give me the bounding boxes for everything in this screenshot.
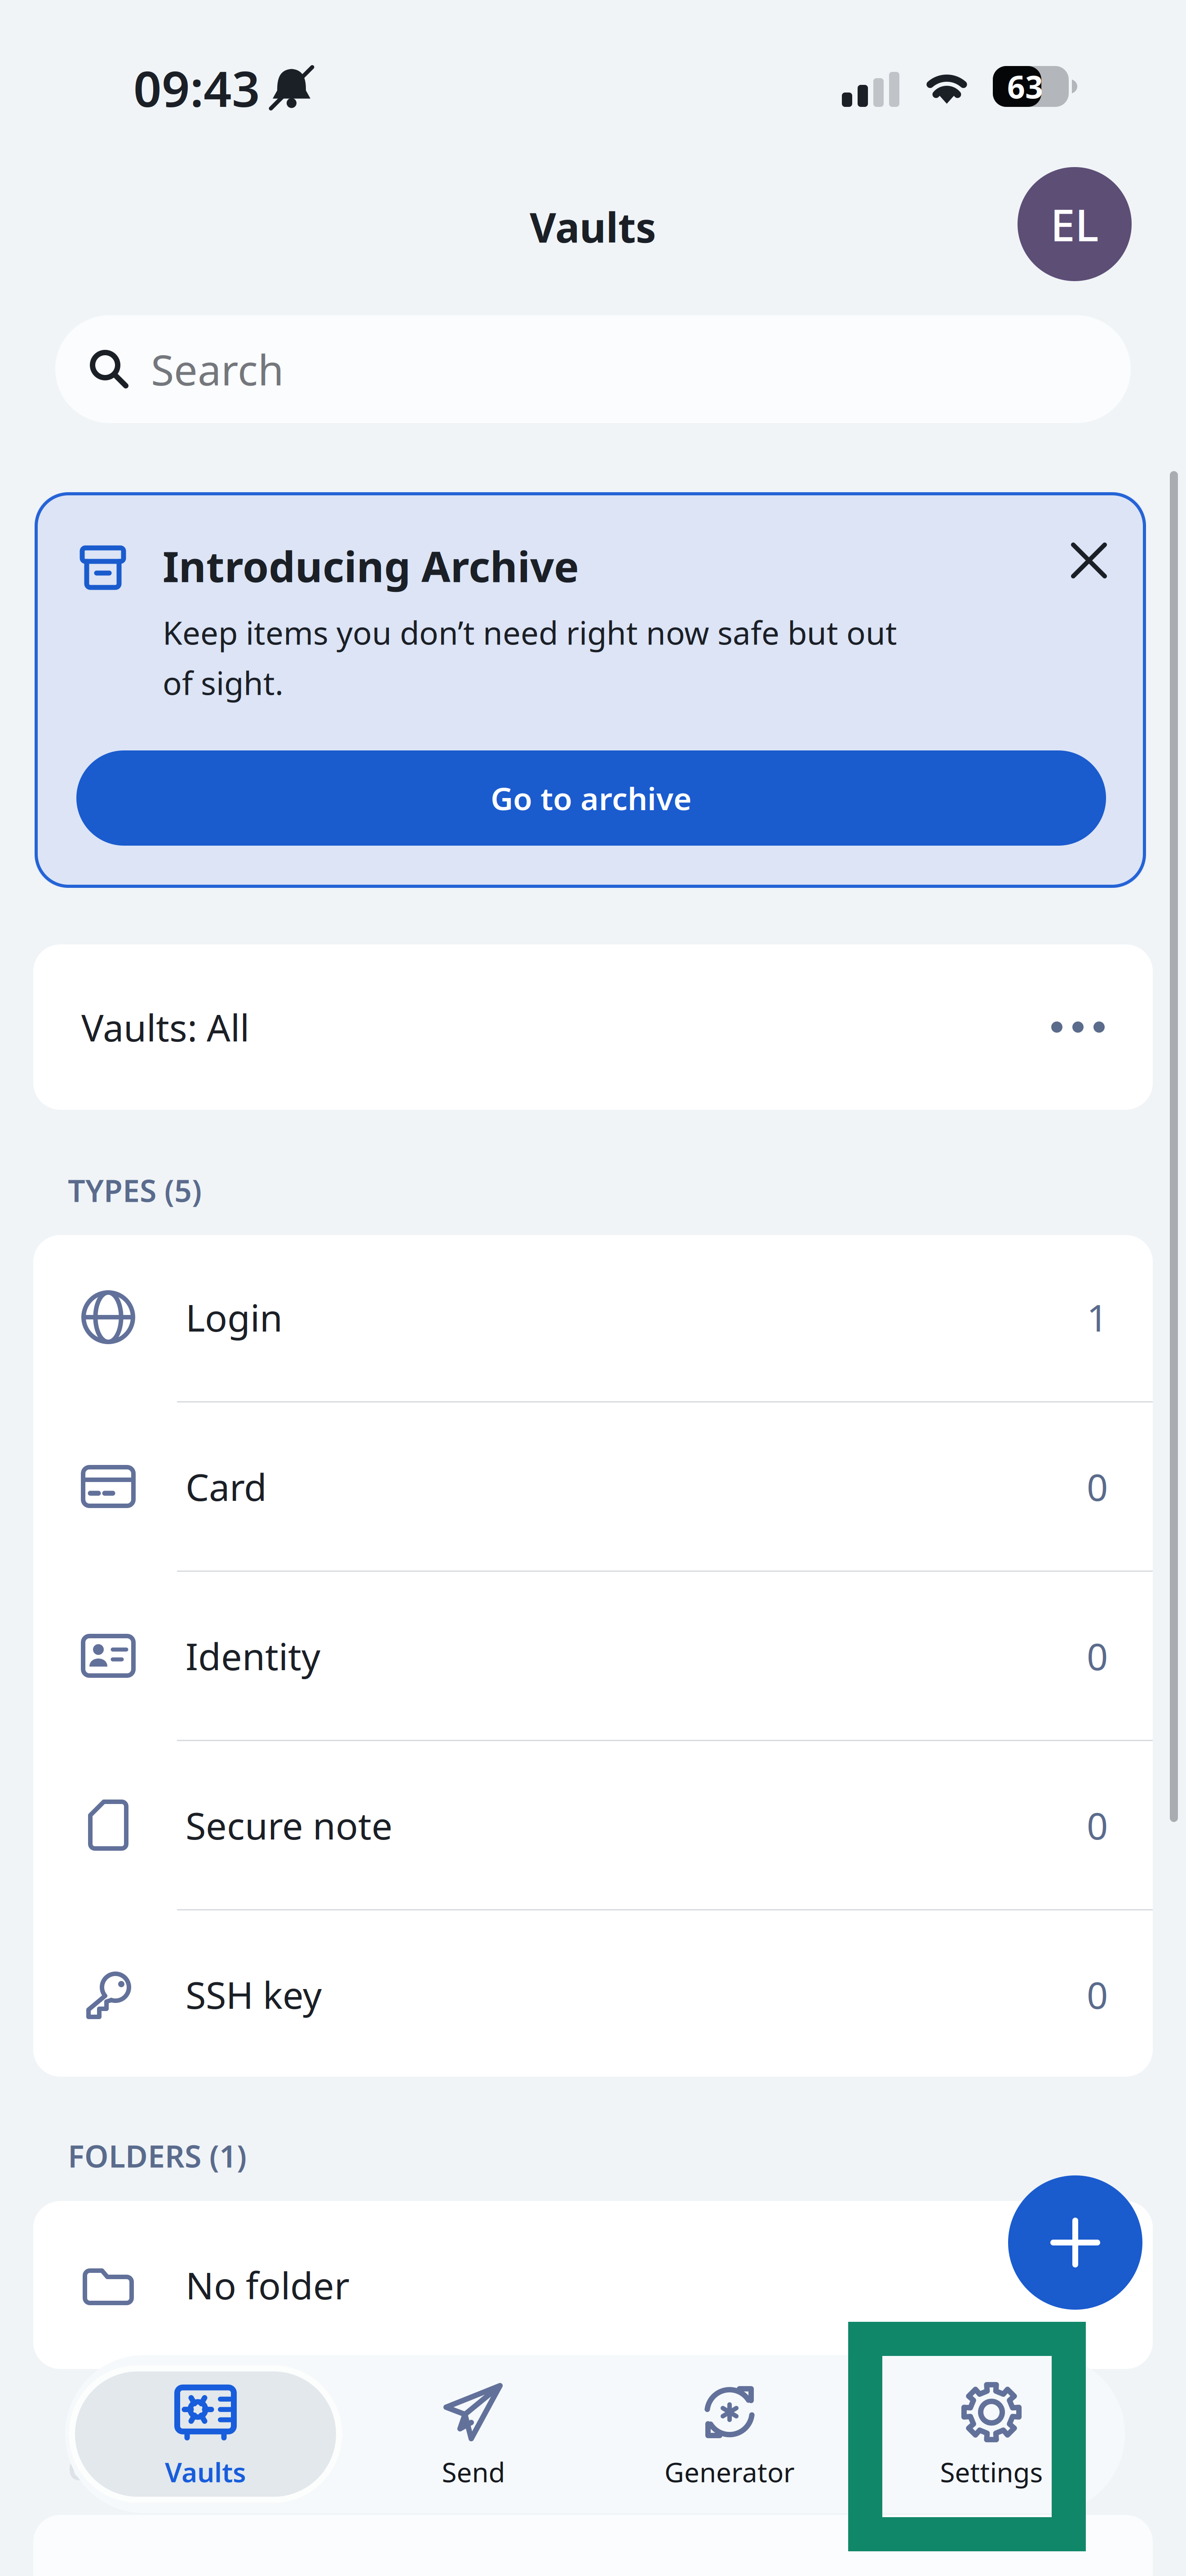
staticText: of sight. bbox=[163, 662, 283, 704]
staticText: Vaults bbox=[165, 2454, 246, 2490]
staticText: Settings bbox=[940, 2454, 1043, 2490]
staticText: No folder bbox=[186, 2260, 350, 2310]
button[interactable]: Default collection bbox=[33, 2515, 1153, 2576]
staticText: Vaults: All bbox=[81, 1002, 249, 1052]
staticText: Generator bbox=[664, 2454, 795, 2490]
staticText: COLLECTIONS (1) bbox=[68, 2448, 320, 2488]
button[interactable]: Search bbox=[55, 315, 1131, 423]
staticText: Go to archive bbox=[491, 777, 692, 819]
button[interactable]: SSH key bbox=[33, 1910, 1153, 2078]
button[interactable]: Generator bbox=[601, 2355, 858, 2513]
staticText: Identity bbox=[186, 1631, 320, 1680]
staticText: Vaults bbox=[530, 200, 656, 254]
staticText: TYPES (5) bbox=[68, 1170, 202, 1210]
button[interactable]: Vaults: All bbox=[33, 944, 1153, 1110]
staticText: 63 bbox=[1007, 66, 1043, 107]
button[interactable]: Card bbox=[33, 1403, 1153, 1570]
staticText: 0 bbox=[1087, 1800, 1108, 1850]
button[interactable]: Send bbox=[346, 2355, 601, 2513]
button[interactable]: Account bbox=[1018, 167, 1132, 281]
staticText: 09:43 bbox=[133, 55, 260, 120]
button[interactable]: Add item bbox=[1008, 2175, 1142, 2310]
button[interactable]: Secure note bbox=[33, 1741, 1153, 1909]
button[interactable]: Dismiss bbox=[1071, 543, 1107, 578]
staticText: Secure note bbox=[186, 1800, 393, 1850]
staticText: Card bbox=[186, 1462, 267, 1511]
staticText: EL bbox=[1050, 195, 1099, 254]
staticText: FOLDERS (1) bbox=[68, 2135, 247, 2176]
staticText: 0 bbox=[1087, 1970, 1108, 2019]
staticText: 1 bbox=[1087, 1293, 1108, 1342]
staticText: Send bbox=[442, 2454, 505, 2490]
staticText: Search bbox=[151, 341, 284, 397]
staticText: SSH key bbox=[186, 1970, 322, 2019]
staticText: Keep items you don’t need right now safe… bbox=[163, 611, 897, 653]
button[interactable]: Identity bbox=[33, 1572, 1153, 1740]
staticText: 0 bbox=[1087, 1631, 1108, 1680]
staticText: Login bbox=[186, 1293, 283, 1342]
button[interactable]: Vaults bbox=[65, 2355, 346, 2513]
button[interactable]: No folder bbox=[33, 2201, 1153, 2369]
button[interactable]: Settings bbox=[858, 2355, 1125, 2513]
button[interactable]: Login bbox=[33, 1233, 1153, 1401]
staticText: 0 bbox=[1087, 1462, 1108, 1511]
button[interactable]: Go to archive bbox=[76, 750, 1106, 846]
staticText: Introducing Archive bbox=[163, 538, 579, 594]
